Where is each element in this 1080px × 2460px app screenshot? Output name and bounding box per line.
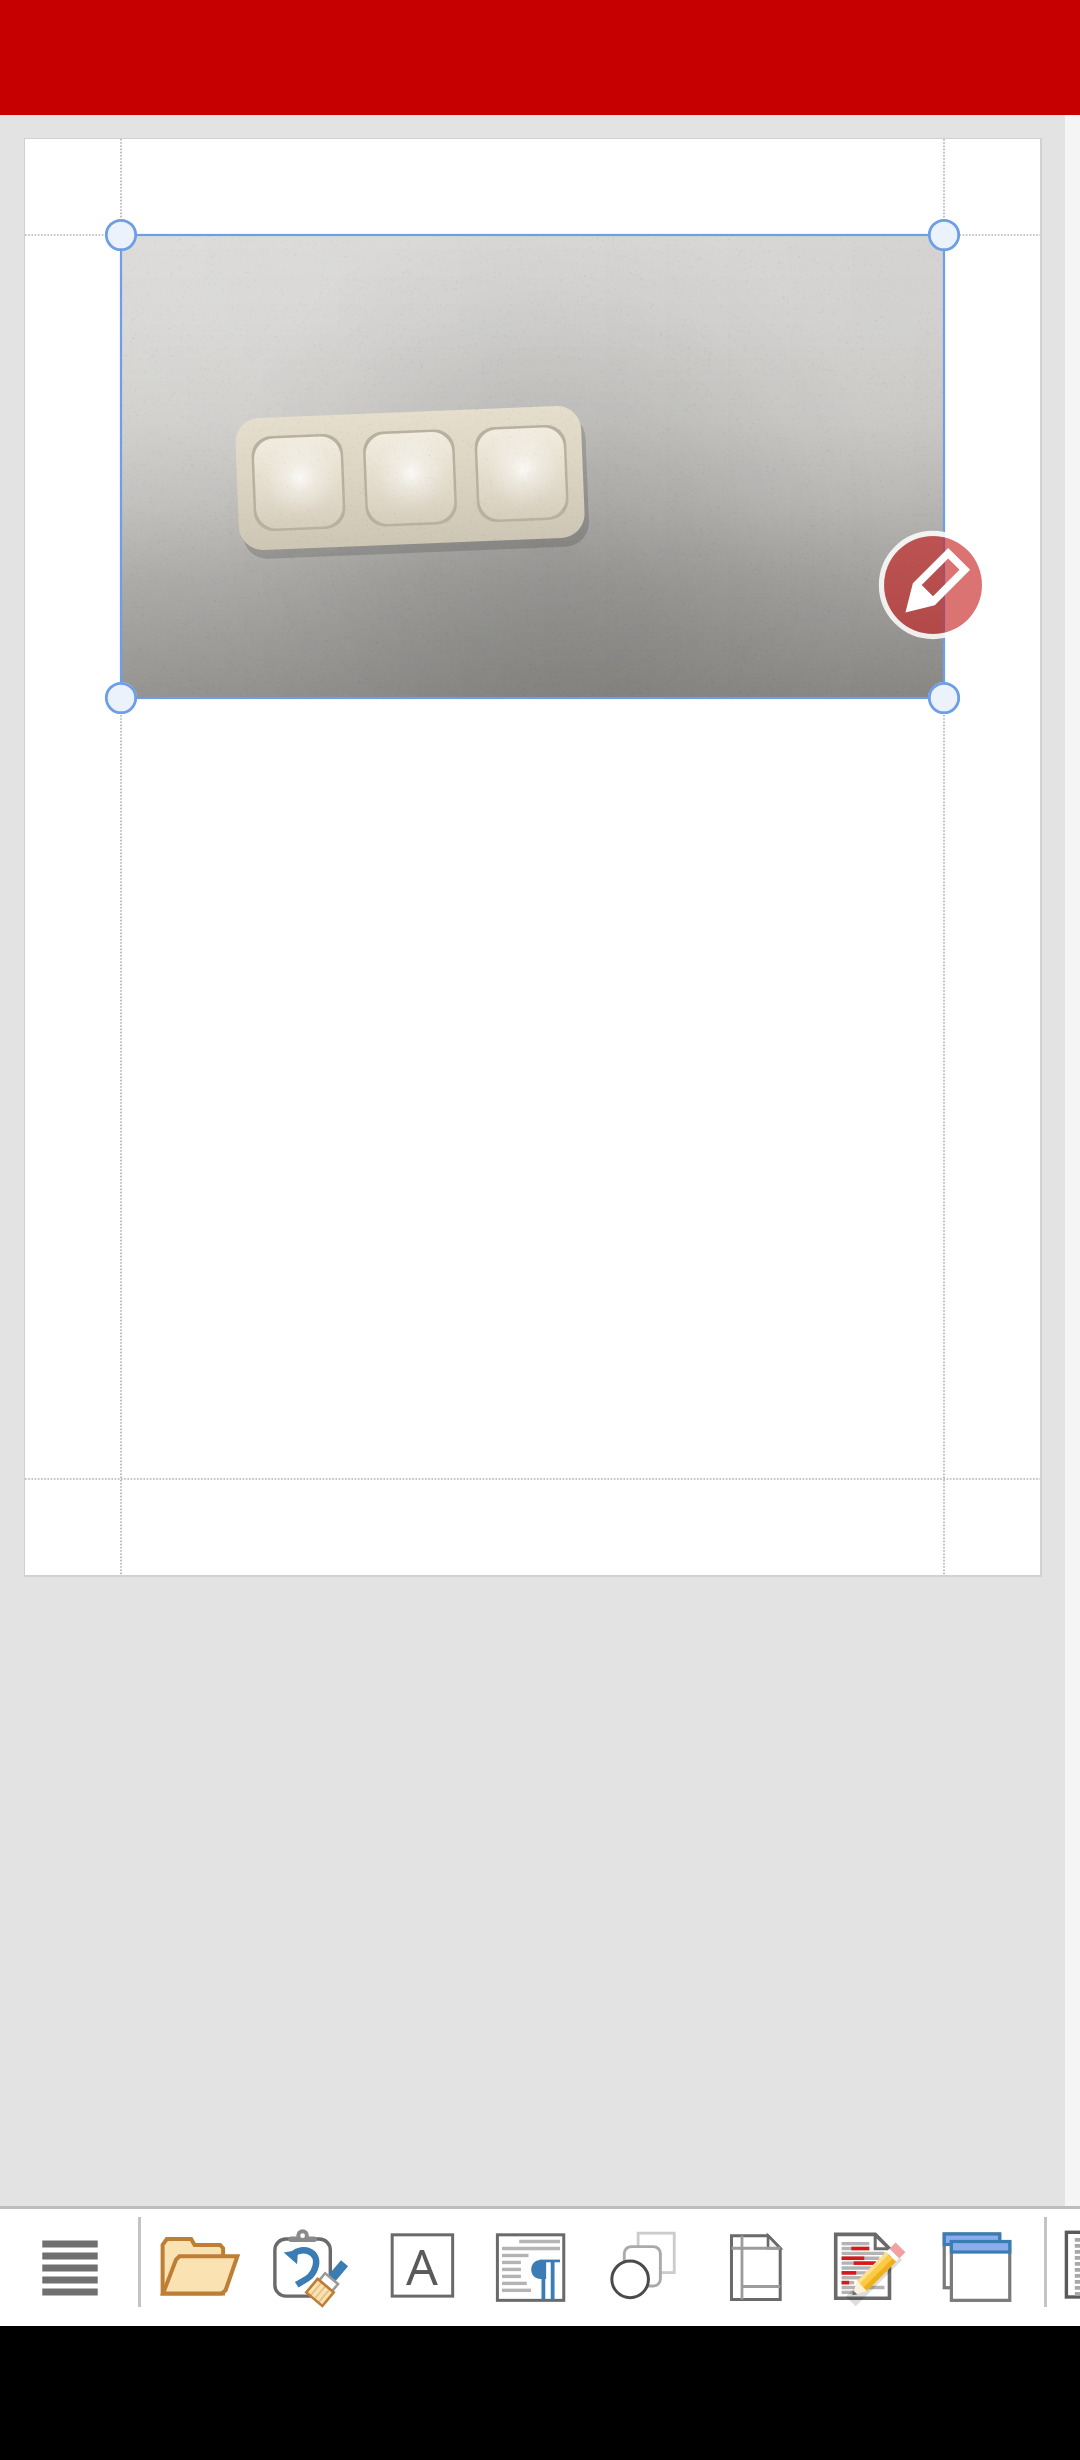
button[interactable]: Paragraph [489,2226,573,2310]
button[interactable]: Page layout [713,2226,797,2310]
button[interactable]: Undo [269,2226,353,2310]
button[interactable]: Review [829,2226,913,2310]
button[interactable]: Edit [877,529,989,641]
button[interactable]: More [1058,2226,1080,2310]
button[interactable]: Menu [28,2226,112,2310]
button[interactable]: Font [380,2226,464,2310]
button[interactable]: Insert shape [602,2226,686,2310]
staticText: A [406,2232,438,2300]
button[interactable]: Open [158,2226,242,2310]
button[interactable]: View [935,2226,1019,2310]
